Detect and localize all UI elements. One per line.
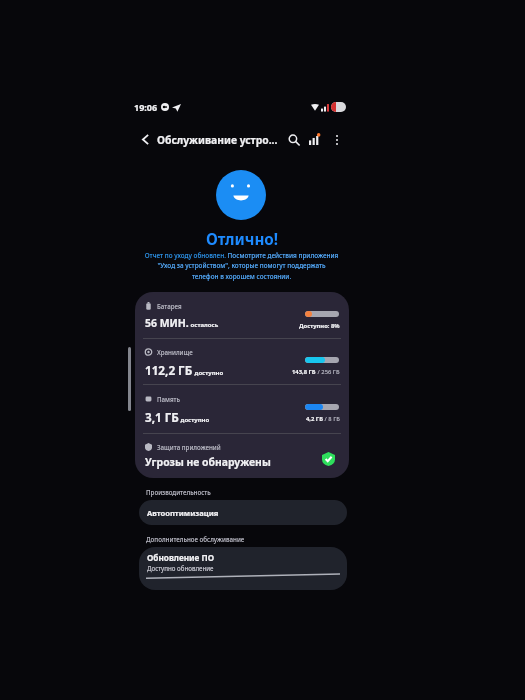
staticText: Память xyxy=(157,395,181,403)
staticText: Доступно обновление xyxy=(147,564,214,572)
staticText: 112,2 ГБ xyxy=(145,362,193,378)
button[interactable]: Автооптимизация xyxy=(139,500,347,525)
staticText: 3,1 ГБ xyxy=(145,409,179,425)
button[interactable]: Обновление ПО xyxy=(139,547,347,590)
staticText: Производительность xyxy=(146,488,211,496)
button[interactable]: Батарея xyxy=(135,292,349,338)
staticText: / 8 ГБ xyxy=(323,415,340,423)
staticText: Доступно: 8% xyxy=(299,322,340,330)
staticText: осталось xyxy=(189,321,219,329)
staticText: 19:06 xyxy=(134,101,158,113)
staticText: Хранилище xyxy=(157,348,193,356)
staticText: Отлично! xyxy=(206,229,279,250)
button[interactable]: Back xyxy=(137,131,153,147)
staticText: 4,2 ГБ xyxy=(306,415,323,423)
staticText: 56 МИН. xyxy=(145,316,189,330)
button[interactable]: Защита приложений xyxy=(135,433,349,478)
staticText: Дополнительное обслуживание xyxy=(146,535,245,543)
button[interactable]: Память xyxy=(135,385,349,434)
staticText: 143,8 ГБ xyxy=(292,368,316,376)
staticText: / 256 ГБ xyxy=(316,368,340,376)
staticText: Угрозы не обнаружены xyxy=(145,455,271,469)
staticText: Обслуживание устро... xyxy=(157,133,278,147)
button[interactable]: More options xyxy=(328,131,345,148)
staticText: Отчет по уходу обновлен. Посмотрите дейс… xyxy=(142,251,341,281)
staticText: доступно xyxy=(193,369,224,377)
staticText: Автооптимизация xyxy=(147,508,219,518)
button[interactable]: Search xyxy=(285,131,302,148)
button[interactable]: Usage statistics xyxy=(306,131,323,148)
button[interactable]: Хранилище xyxy=(135,338,349,385)
staticText: Защита приложений xyxy=(157,443,221,451)
staticText: Батарея xyxy=(157,302,182,310)
staticText: Обновление ПО xyxy=(147,552,215,563)
staticText: доступно xyxy=(179,416,210,424)
